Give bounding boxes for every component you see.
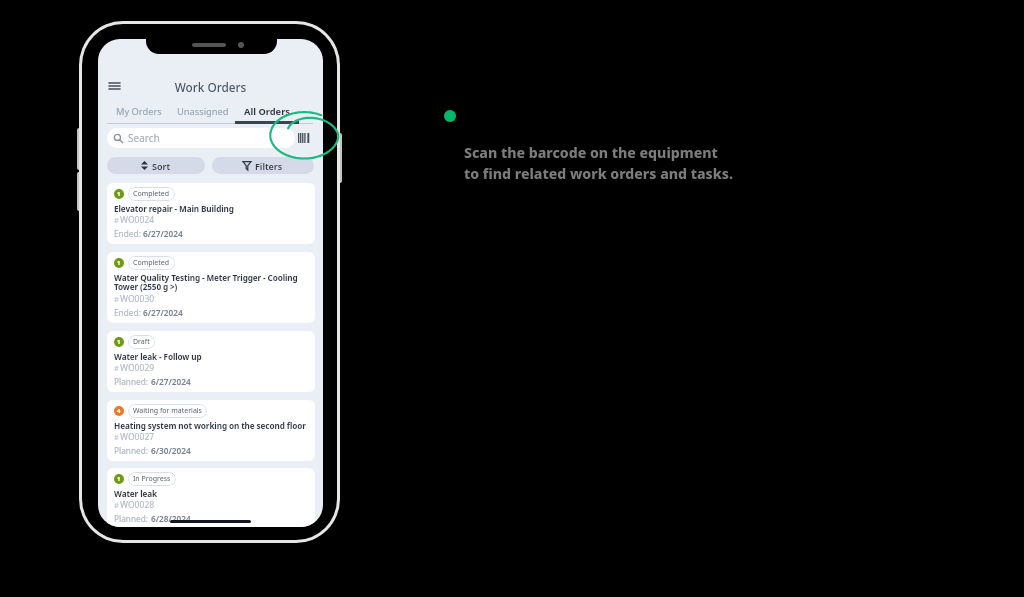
staticText: WO0029 [120, 362, 155, 374]
staticText: In Progress [133, 474, 171, 484]
staticText: All Orders [244, 105, 290, 118]
staticText: # [114, 294, 119, 304]
staticText: # [114, 215, 119, 225]
staticText: Waiting for materials [133, 406, 202, 416]
staticText: 6/28/2024 [151, 513, 191, 524]
staticText: 4 [117, 407, 121, 415]
staticText: 1 [117, 259, 121, 267]
button[interactable]: My Orders [106, 105, 171, 123]
staticText: Elevator repair - Main Building [114, 203, 234, 214]
staticText: 1 [117, 338, 121, 346]
button[interactable]: Search [107, 128, 295, 148]
staticText: Unassigned [177, 105, 229, 118]
button[interactable]: 1 [107, 331, 315, 392]
button[interactable]: 1 [107, 468, 315, 527]
staticText: 6/27/2024 [143, 307, 183, 318]
staticText: WO0028 [120, 499, 155, 511]
button[interactable]: 1 [107, 252, 315, 323]
button[interactable]: Unassigned [171, 105, 235, 123]
staticText: Heating system not working on the second… [114, 420, 306, 431]
staticText: Completed [133, 258, 170, 268]
button[interactable]: Sort [107, 157, 205, 174]
button[interactable]: 1 [107, 183, 315, 244]
staticText: Completed [133, 189, 170, 199]
staticText: 6/27/2024 [143, 228, 183, 239]
staticText: 6/30/2024 [151, 445, 191, 456]
staticText: Water Quality Testing - Meter Trigger - … [114, 272, 308, 293]
staticText: Scan the barcode on the equipment to fin… [464, 143, 733, 183]
staticText: My Orders [116, 105, 162, 118]
staticText: Planned: [114, 376, 149, 387]
staticText: WO0027 [120, 431, 155, 443]
staticText: Sort [152, 160, 171, 172]
staticText: Draft [133, 337, 150, 347]
staticText: Planned: [114, 445, 149, 456]
staticText: 6/27/2024 [151, 376, 191, 387]
staticText: WO0024 [120, 214, 155, 226]
button[interactable]: Scan barcode [296, 130, 312, 146]
staticText: WO0030 [120, 293, 155, 305]
staticText: Water leak - Follow up [114, 351, 202, 362]
staticText: Ended: [114, 228, 141, 239]
staticText: Work Orders [98, 79, 323, 95]
staticText: Filters [255, 160, 283, 172]
staticText: Planned: [114, 513, 149, 524]
staticText: 1 [117, 475, 121, 483]
staticText: # [114, 432, 119, 442]
staticText: Water leak [114, 488, 157, 499]
button[interactable]: All Orders [235, 105, 299, 124]
staticText: # [114, 363, 119, 373]
button[interactable]: Menu [105, 77, 123, 95]
staticText: # [114, 500, 119, 510]
staticText: Search [128, 131, 160, 145]
button[interactable]: 4 [107, 400, 315, 461]
staticText: 1 [117, 190, 121, 198]
button[interactable]: Filters [212, 157, 314, 174]
staticText: Ended: [114, 307, 141, 318]
